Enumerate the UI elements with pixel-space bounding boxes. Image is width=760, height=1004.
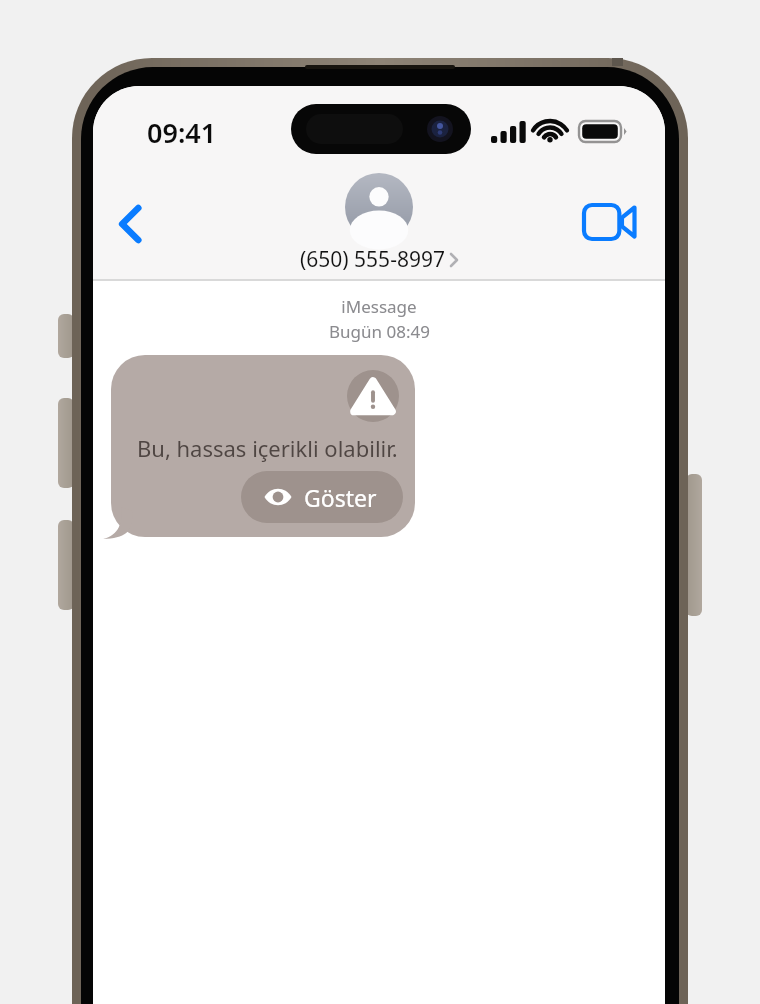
button[interactable]: Göster xyxy=(241,471,403,523)
staticText: (650) 555-8997 xyxy=(300,245,445,274)
staticText: Göster xyxy=(304,482,377,513)
other: Sensitive content warning xyxy=(347,370,399,422)
staticText: Bu, hassas içerikli olabilir. xyxy=(137,433,398,463)
button[interactable]: (650) 555-8997 xyxy=(300,173,458,274)
staticText: iMessage xyxy=(341,295,417,318)
button[interactable]: FaceTime video call xyxy=(579,196,641,248)
button[interactable]: Back xyxy=(103,196,159,252)
staticText: Bugün 08:49 xyxy=(329,320,430,343)
staticText: 09:41 xyxy=(147,114,217,151)
